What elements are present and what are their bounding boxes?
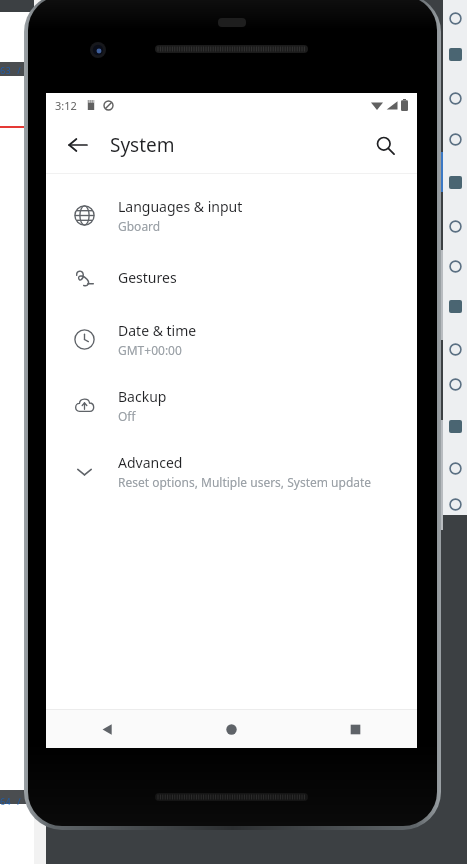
- staticText: GMT+00:00: [118, 342, 182, 358]
- staticText: Gestures: [118, 268, 177, 287]
- staticText: 63 /: [0, 64, 22, 76]
- button[interactable]: Recent apps: [293, 710, 417, 748]
- button[interactable]: Languages & input: [46, 182, 417, 248]
- button[interactable]: Search: [363, 123, 407, 167]
- button[interactable]: Back: [56, 123, 100, 167]
- staticText: Reset options, Multiple users, System up…: [118, 474, 372, 490]
- button[interactable]: Home: [169, 710, 293, 748]
- button[interactable]: Gestures: [46, 248, 417, 306]
- button[interactable]: Advanced: [46, 438, 417, 504]
- staticText: Languages & input: [118, 197, 243, 216]
- staticText: Date & time: [118, 321, 197, 340]
- staticText: Off: [118, 408, 136, 424]
- staticText: System: [110, 132, 175, 158]
- staticText: Gboard: [118, 218, 161, 234]
- staticText: 64 /: [0, 795, 22, 807]
- button[interactable]: Date & time: [46, 306, 417, 372]
- button[interactable]: Backup: [46, 372, 417, 438]
- staticText: Backup: [118, 387, 167, 406]
- button[interactable]: Back: [46, 710, 169, 748]
- staticText: 3:12: [55, 98, 77, 113]
- staticText: Advanced: [118, 453, 183, 472]
